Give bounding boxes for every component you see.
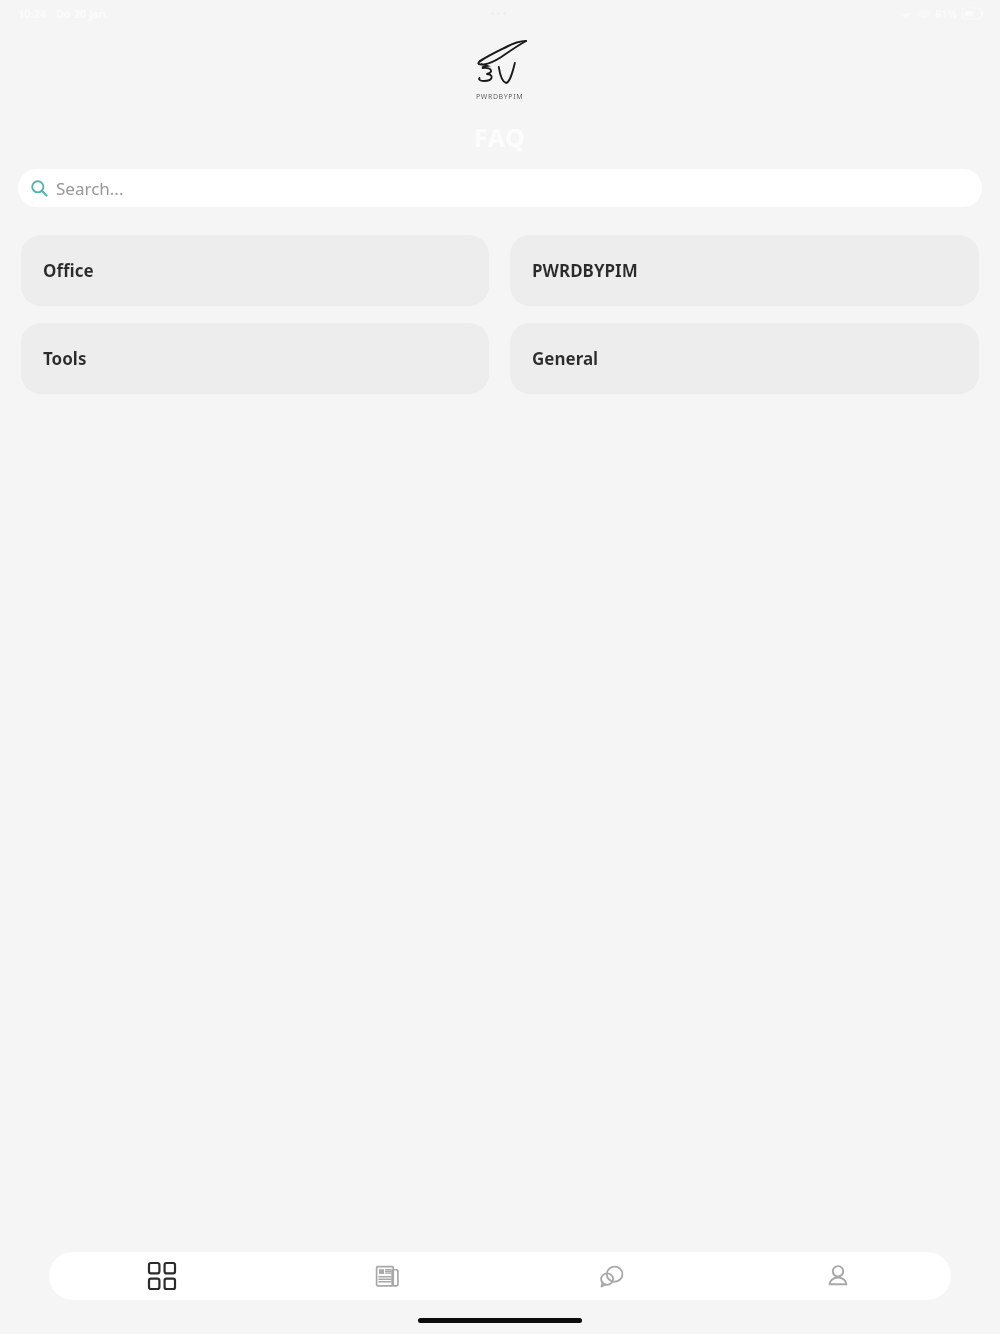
button[interactable]: PWRDBYPIM bbox=[510, 235, 979, 306]
staticText: Office bbox=[43, 259, 94, 282]
button[interactable]: Profile bbox=[725, 1252, 951, 1300]
staticText: Search... bbox=[56, 177, 124, 200]
staticText: PWRDBYPIM bbox=[532, 259, 638, 282]
staticText: General bbox=[532, 347, 599, 370]
button[interactable]: General bbox=[510, 323, 979, 394]
button[interactable]: News bbox=[274, 1252, 499, 1300]
button[interactable]: Chat bbox=[499, 1252, 725, 1300]
staticText: Tools bbox=[43, 347, 87, 370]
button[interactable]: Tools bbox=[21, 323, 489, 394]
button[interactable]: Home grid bbox=[49, 1252, 274, 1300]
button[interactable]: Search... bbox=[18, 169, 982, 207]
button[interactable]: Office bbox=[21, 235, 489, 306]
staticText: PWRDBYPIM bbox=[476, 92, 524, 102]
